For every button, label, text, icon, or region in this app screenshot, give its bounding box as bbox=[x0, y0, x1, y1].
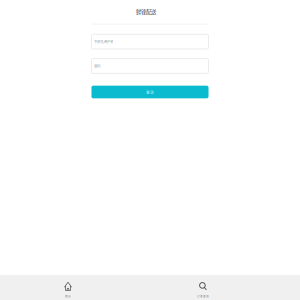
button[interactable]: 登录 bbox=[91, 86, 208, 98]
button[interactable]: 首页 bbox=[34, 275, 102, 300]
staticText: 手机号/用户名 bbox=[94, 39, 113, 44]
staticText: 鲜锋配送 bbox=[136, 8, 156, 15]
staticText: 首页 bbox=[65, 294, 71, 298]
staticText: 密码 bbox=[94, 64, 100, 68]
button[interactable]: 订单查询 bbox=[169, 275, 237, 300]
staticText: 订单查询 bbox=[197, 294, 209, 298]
staticText: 登录 bbox=[146, 89, 154, 95]
